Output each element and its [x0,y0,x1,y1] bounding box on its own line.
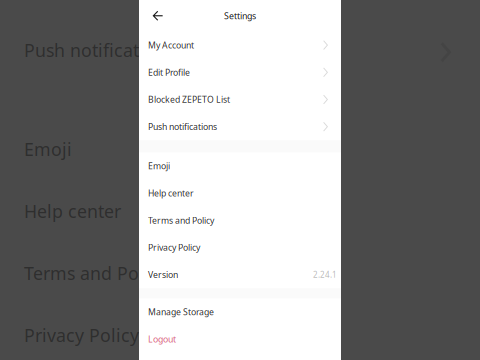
staticText: Blocked ZEPETO List [148,94,230,105]
staticText: Help center [148,187,194,199]
button[interactable]: Push notifications [139,113,341,140]
staticText: Emoji [24,137,72,161]
staticText: Terms and Po [24,261,139,285]
button[interactable]: Logout [139,325,341,353]
staticText: Logout [148,333,176,345]
staticText: My Account [148,39,194,51]
button[interactable]: Back [147,5,169,27]
staticText: Version [148,269,178,281]
staticText: Emoji [148,160,170,172]
button[interactable]: My Account [139,31,341,59]
staticText: Push notificat [24,38,139,62]
staticText: Help center [24,199,121,223]
button[interactable]: Terms and Policy [139,207,341,234]
staticText: Edit Profile [148,66,190,78]
staticText: Manage Storage [148,306,214,318]
staticText: Privacy Policy [24,323,139,347]
button[interactable]: Help center [139,179,341,207]
button[interactable]: Edit Profile [139,59,341,86]
staticText: Push notifications [148,121,217,133]
button[interactable]: Version [139,261,341,288]
button[interactable]: Privacy Policy [139,234,341,261]
staticText: Terms and Policy [148,214,214,226]
button[interactable]: Emoji [139,152,341,179]
staticText: Settings [224,10,256,22]
staticText: Privacy Policy [148,242,200,253]
staticText: 2.24.1 [313,269,337,280]
button[interactable]: Manage Storage [139,298,341,325]
button[interactable]: Blocked ZEPETO List [139,86,341,113]
